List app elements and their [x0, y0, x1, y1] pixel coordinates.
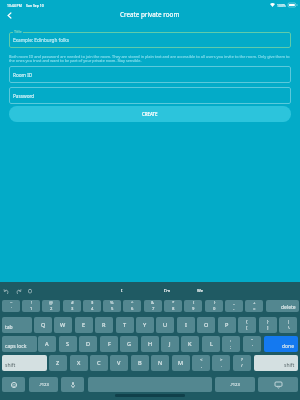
- button[interactable]: R: [95, 317, 113, 333]
- staticText: |: [287, 319, 290, 325]
- staticText: B: [138, 359, 142, 367]
- button[interactable]: O: [197, 317, 215, 333]
- staticText: done: [282, 343, 295, 350]
- staticText: ~: [10, 300, 13, 306]
- button[interactable]: K: [181, 336, 199, 352]
- staticText: 2: [50, 306, 53, 312]
- button[interactable]: shift: [2, 355, 47, 371]
- button[interactable]: %: [103, 300, 121, 312]
- button[interactable]: D: [79, 336, 97, 352]
- staticText: E: [82, 321, 86, 329]
- button[interactable]: T: [116, 317, 134, 333]
- button[interactable]: F: [100, 336, 118, 352]
- button[interactable]: J: [161, 336, 179, 352]
- button[interactable]: Back: [3, 9, 15, 21]
- staticText: 5: [111, 306, 114, 312]
- button[interactable]: @: [42, 300, 60, 312]
- button[interactable]: W: [54, 317, 72, 333]
- button[interactable]: Y: [136, 317, 154, 333]
- button[interactable]: Redo: [14, 287, 22, 295]
- staticText: caps lock: [5, 343, 27, 350]
- button[interactable]: B: [131, 355, 149, 371]
- button[interactable]: N: [151, 355, 169, 371]
- button[interactable]: tab: [2, 317, 32, 333]
- button[interactable]: +: [245, 300, 263, 312]
- button[interactable]: delete: [266, 300, 299, 312]
- button[interactable]: E: [75, 317, 93, 333]
- staticText: 3: [71, 306, 74, 312]
- button[interactable]: Hide keyboard: [258, 377, 298, 392]
- button[interactable]: G: [120, 336, 138, 352]
- button[interactable]: A: [38, 336, 56, 352]
- button[interactable]: V: [110, 355, 128, 371]
- button[interactable]: X: [70, 355, 88, 371]
- button[interactable]: S: [59, 336, 77, 352]
- button[interactable]: Microphone: [61, 377, 84, 392]
- button[interactable]: {: [238, 317, 256, 333]
- staticText: H: [148, 340, 153, 348]
- button[interactable]: Q: [34, 317, 52, 333]
- staticText: -: [233, 306, 235, 312]
- button[interactable]: _: [225, 300, 243, 312]
- button[interactable]: .?123: [215, 377, 255, 392]
- button[interactable]: ): [205, 300, 223, 312]
- staticText: Example: Edinburgh folks: [13, 37, 69, 43]
- button[interactable]: ^: [123, 300, 141, 312]
- button[interactable]: P: [218, 317, 236, 333]
- button[interactable]: Example: Edinburgh folks: [9, 32, 291, 48]
- button[interactable]: Room ID: [9, 66, 291, 83]
- staticText: R: [102, 321, 106, 329]
- staticText: S: [66, 340, 70, 348]
- button[interactable]: .?123: [29, 377, 58, 392]
- staticText: ,: [201, 363, 203, 369]
- staticText: }: [267, 319, 269, 325]
- staticText: %: [110, 300, 114, 306]
- button[interactable]: caps lock: [2, 336, 37, 352]
- button[interactable]: >: [212, 355, 230, 371]
- staticText: 7: [152, 306, 155, 312]
- staticText: Z: [56, 359, 60, 367]
- staticText: Room ID: [13, 72, 33, 78]
- button[interactable]: I'm: [158, 286, 177, 296]
- button[interactable]: H: [141, 336, 159, 352]
- button[interactable]: U: [156, 317, 174, 333]
- staticText: O: [204, 321, 209, 329]
- staticText: V: [117, 359, 121, 367]
- staticText: A: [45, 340, 49, 348]
- staticText: 9: [192, 306, 195, 312]
- button[interactable]: }: [259, 317, 277, 333]
- button[interactable]: L: [202, 336, 220, 352]
- staticText: .?123: [39, 382, 49, 387]
- staticText: shift: [5, 362, 16, 369]
- button[interactable]: Password: [9, 87, 291, 104]
- button[interactable]: I: [177, 317, 195, 333]
- button[interactable]: done: [264, 336, 298, 352]
- button[interactable]: M: [172, 355, 190, 371]
- staticText: G: [127, 340, 132, 348]
- button[interactable]: ~: [2, 300, 20, 312]
- staticText: [: [246, 325, 248, 331]
- button[interactable]: C: [90, 355, 108, 371]
- button[interactable]: #: [63, 300, 81, 312]
- button[interactable]: $: [83, 300, 101, 312]
- button[interactable]: |: [279, 317, 297, 333]
- button[interactable]: Emoji: [2, 377, 25, 392]
- button[interactable]: We: [191, 286, 210, 296]
- button[interactable]: &: [144, 300, 162, 312]
- staticText: :: [230, 338, 232, 344]
- button[interactable]: *: [164, 300, 182, 312]
- staticText: .?123: [230, 382, 240, 387]
- button[interactable]: Paste: [26, 287, 34, 295]
- button[interactable]: Z: [49, 355, 67, 371]
- button[interactable]: CREATE: [9, 106, 291, 122]
- button[interactable]: Undo: [2, 287, 10, 295]
- button[interactable]: I: [115, 286, 129, 296]
- button[interactable]: <: [192, 355, 210, 371]
- button[interactable]: shift: [254, 355, 298, 371]
- button[interactable]: ?: [233, 355, 251, 371]
- button[interactable]: ": [243, 336, 261, 352]
- button[interactable]: :: [222, 336, 240, 352]
- button[interactable]: (: [184, 300, 202, 312]
- button[interactable]: !: [22, 300, 40, 312]
